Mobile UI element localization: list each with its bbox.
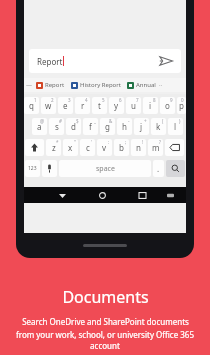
staticText: _ bbox=[94, 118, 96, 124]
button[interactable]: n bbox=[131, 139, 146, 156]
staticText: j bbox=[140, 121, 143, 132]
staticText: ? bbox=[159, 139, 161, 145]
button[interactable]: Shift bbox=[25, 139, 44, 156]
staticText: - bbox=[128, 118, 130, 124]
staticText: 0 bbox=[181, 97, 184, 103]
button[interactable]: Annual bbox=[126, 81, 157, 89]
staticText: Annual bbox=[136, 81, 156, 89]
button[interactable]: Report bbox=[29, 49, 181, 73]
staticText: ! bbox=[142, 139, 144, 145]
staticText: y bbox=[114, 100, 119, 111]
staticText: o bbox=[165, 100, 170, 111]
button[interactable]: Home bbox=[94, 187, 110, 203]
staticText: s bbox=[55, 121, 59, 132]
button[interactable]: Switch keyboard bbox=[162, 187, 178, 203]
staticText: 4 bbox=[85, 97, 88, 103]
button[interactable]: q bbox=[24, 97, 39, 114]
staticText: ·· bbox=[159, 81, 163, 89]
staticText: t bbox=[98, 100, 101, 111]
staticText: ' bbox=[91, 139, 93, 145]
staticText: 8 bbox=[153, 97, 156, 103]
staticText: a bbox=[37, 121, 42, 132]
staticText: h bbox=[122, 121, 127, 132]
staticText: w bbox=[45, 100, 52, 111]
button[interactable]: a bbox=[32, 118, 47, 135]
staticText: x bbox=[68, 142, 73, 153]
staticText: c bbox=[86, 142, 90, 153]
staticText: . bbox=[157, 163, 160, 174]
button[interactable]: Back bbox=[54, 187, 70, 203]
staticText: k bbox=[156, 121, 161, 132]
staticText: @ bbox=[40, 118, 45, 124]
button[interactable]: o bbox=[160, 97, 175, 114]
staticText: r bbox=[81, 100, 85, 111]
button[interactable]: l bbox=[168, 118, 183, 135]
staticText: Report bbox=[45, 81, 65, 89]
button[interactable]: 123 bbox=[25, 160, 40, 177]
button[interactable]: . bbox=[153, 160, 164, 177]
button[interactable]: r bbox=[75, 97, 90, 114]
staticText: 5 bbox=[102, 97, 105, 103]
staticText: : bbox=[108, 139, 110, 145]
button[interactable]: g bbox=[100, 118, 115, 135]
staticText: 9 bbox=[170, 97, 173, 103]
staticText: n bbox=[136, 142, 141, 153]
button[interactable]: d bbox=[66, 118, 81, 135]
staticText: + bbox=[144, 118, 147, 124]
staticText: 3 bbox=[68, 97, 71, 103]
button[interactable]: Voice input bbox=[42, 160, 57, 177]
button[interactable]: f bbox=[83, 118, 98, 135]
button[interactable]: e bbox=[58, 97, 73, 114]
staticText: z bbox=[52, 142, 56, 153]
staticText: ; bbox=[125, 139, 127, 145]
button[interactable]: j bbox=[134, 118, 149, 135]
staticText: 123 bbox=[28, 165, 37, 172]
staticText: f bbox=[89, 121, 92, 132]
staticText: — bbox=[26, 81, 33, 89]
staticText: l bbox=[174, 121, 177, 132]
other: Send bbox=[159, 54, 173, 68]
button[interactable]: Report bbox=[35, 81, 66, 89]
button[interactable]: p bbox=[177, 97, 186, 114]
staticText: q bbox=[29, 100, 34, 111]
staticText: Report bbox=[37, 56, 63, 67]
button[interactable]: u bbox=[126, 97, 141, 114]
staticText: v bbox=[102, 142, 107, 153]
staticText: 7 bbox=[136, 97, 139, 103]
button[interactable]: History Report bbox=[70, 81, 122, 89]
button[interactable]: t bbox=[92, 97, 107, 114]
button[interactable]: i bbox=[143, 97, 158, 114]
button[interactable]: Backspace bbox=[165, 139, 184, 156]
staticText: 1 bbox=[34, 97, 37, 103]
button[interactable]: Search bbox=[166, 160, 185, 177]
staticText: ) bbox=[179, 118, 181, 124]
staticText: Documents bbox=[62, 286, 149, 308]
staticText: * bbox=[56, 139, 59, 145]
button[interactable]: m bbox=[148, 139, 163, 156]
button[interactable]: w bbox=[41, 97, 56, 114]
button[interactable]: k bbox=[151, 118, 166, 135]
button[interactable]: Recents bbox=[134, 187, 150, 203]
button[interactable]: y bbox=[109, 97, 124, 114]
staticText: " bbox=[74, 139, 76, 145]
staticText: History Report bbox=[80, 81, 121, 89]
staticText: p bbox=[179, 100, 184, 111]
staticText: space bbox=[96, 164, 115, 174]
staticText: g bbox=[105, 121, 110, 132]
button[interactable]: h bbox=[117, 118, 132, 135]
staticText: u bbox=[131, 100, 136, 111]
staticText: e bbox=[63, 100, 68, 111]
staticText: & bbox=[109, 118, 113, 124]
button[interactable]: v bbox=[97, 139, 112, 156]
staticText: from your work, school, or university Of… bbox=[6, 329, 204, 351]
button[interactable]: space bbox=[59, 160, 151, 177]
staticText: ( bbox=[162, 118, 164, 124]
button[interactable]: b bbox=[114, 139, 129, 156]
staticText: i bbox=[149, 100, 152, 111]
button[interactable]: z bbox=[46, 139, 61, 156]
button[interactable]: x bbox=[63, 139, 78, 156]
button[interactable]: s bbox=[49, 118, 64, 135]
staticText: 2 bbox=[51, 97, 54, 103]
button[interactable]: c bbox=[80, 139, 95, 156]
staticText: Search OneDrive and SharePoint documents bbox=[22, 316, 189, 327]
